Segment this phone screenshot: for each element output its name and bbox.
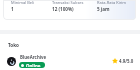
- staticText: Rata-Rata Kirim: [97, 0, 127, 5]
- other: Rating: [112, 58, 118, 64]
- staticText: Online: [26, 63, 41, 67]
- staticText: Transaksi Sukses: [52, 0, 84, 5]
- staticText: 4.9/5.0: [119, 58, 134, 64]
- staticText: Minimal Beli: [11, 0, 35, 5]
- staticText: 1: [11, 6, 14, 12]
- staticText: Toko: [8, 42, 19, 48]
- staticText: 12 (100%): [52, 6, 74, 12]
- button[interactable]: BlueArchive: [0, 54, 140, 68]
- staticText: BlueArchive: [20, 54, 47, 60]
- staticText: 5 jam: [97, 6, 110, 12]
